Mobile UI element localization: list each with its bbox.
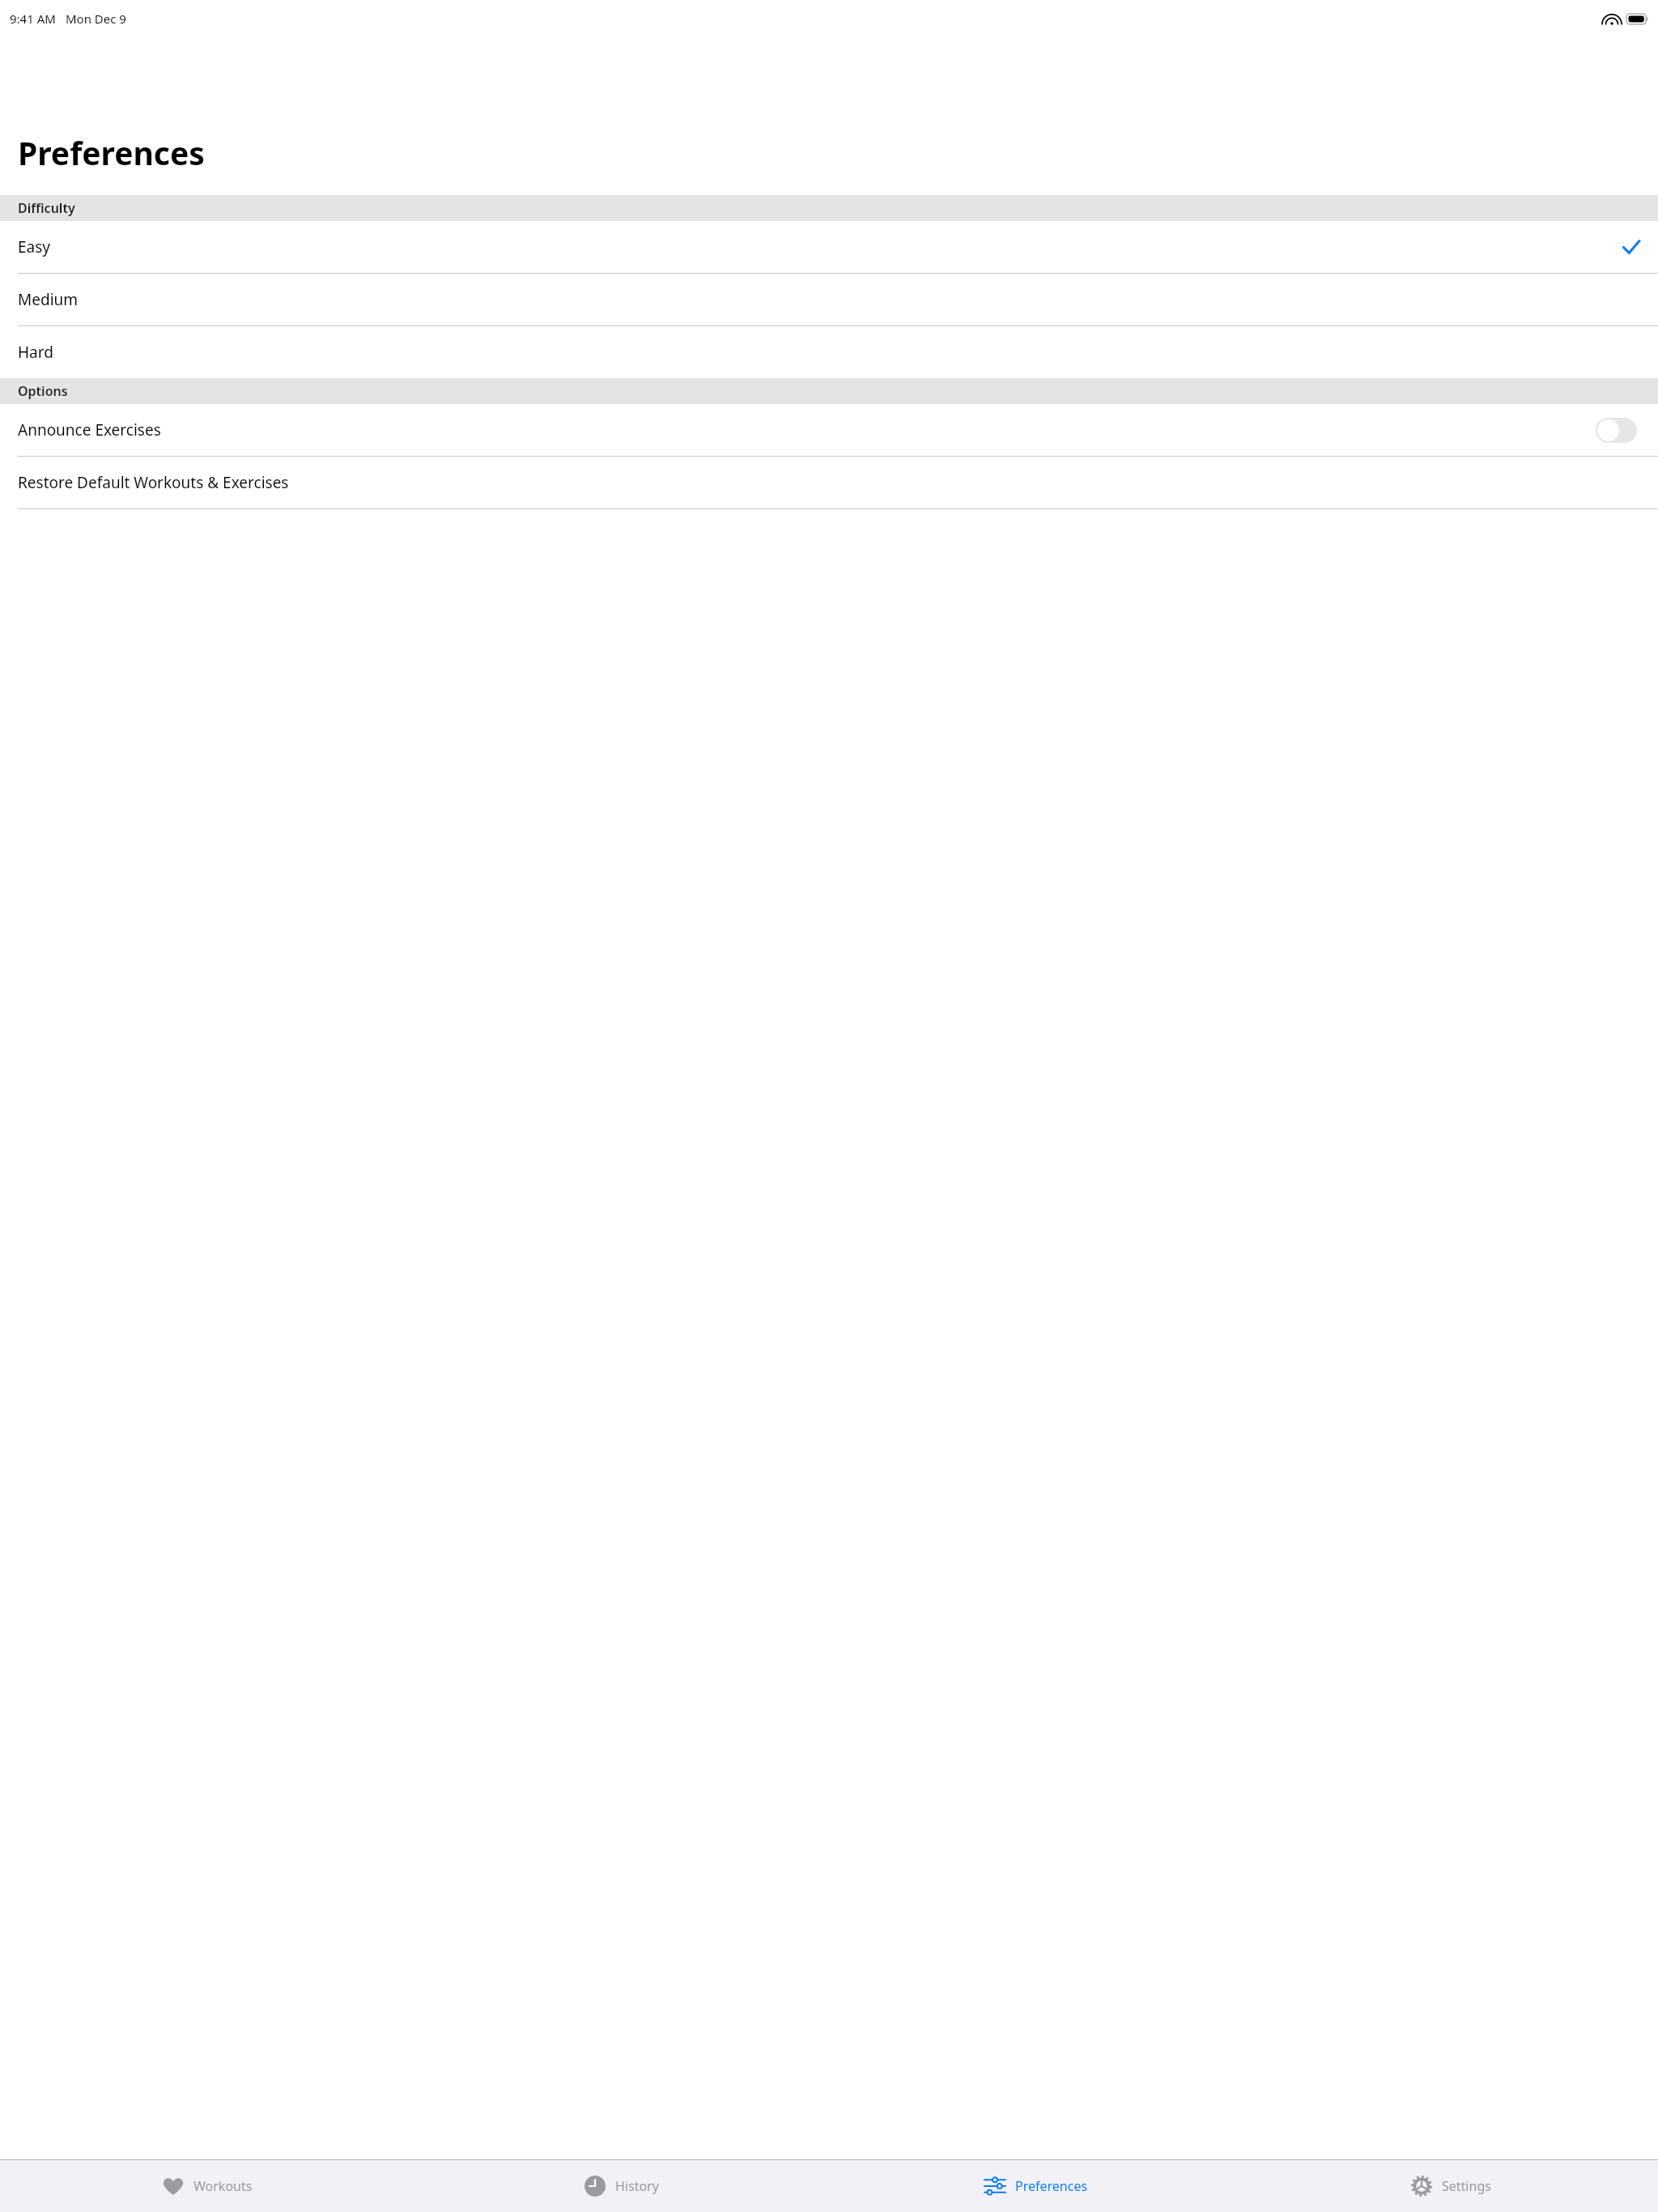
button[interactable]: Medium: [0, 274, 1658, 325]
staticText: Announce Exercises: [18, 419, 161, 440]
staticText: 9:41 AM: [10, 11, 56, 27]
staticText: Medium: [18, 289, 79, 310]
staticText: Restore Default Workouts & Exercises: [18, 472, 289, 493]
staticText: Difficulty: [18, 199, 75, 217]
staticText: Options: [18, 382, 68, 400]
staticText: Workouts: [193, 2177, 253, 2195]
button[interactable]: Preferences: [829, 2160, 1243, 2212]
button[interactable]: History: [414, 2160, 829, 2212]
button[interactable]: Restore Default Workouts & Exercises: [0, 457, 1658, 508]
button[interactable]: Announce Exercises: [0, 404, 1658, 456]
staticText: Mon Dec 9: [66, 11, 126, 27]
staticText: Hard: [18, 342, 53, 363]
staticText: History: [615, 2177, 659, 2195]
staticText: Easy: [18, 236, 51, 257]
other: Announce Exercises toggle, off: [1596, 418, 1637, 443]
button[interactable]: Easy: [0, 221, 1658, 273]
button[interactable]: Workouts: [0, 2160, 414, 2212]
staticText: Preferences: [18, 131, 205, 174]
staticText: Settings: [1442, 2177, 1491, 2195]
button[interactable]: Hard: [0, 326, 1658, 378]
staticText: Preferences: [1015, 2177, 1088, 2195]
button[interactable]: Settings: [1243, 2160, 1658, 2212]
